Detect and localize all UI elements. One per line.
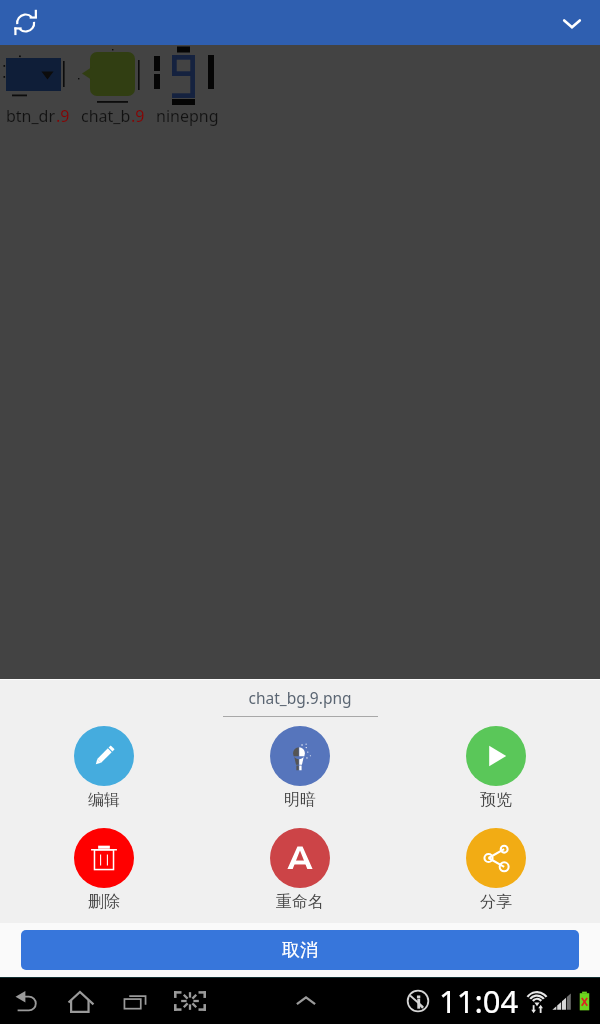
button[interactable]: Home (54, 977, 108, 1024)
button[interactable]: Expand notifications (288, 977, 324, 1024)
staticText: 取消 (282, 939, 318, 962)
button[interactable]: Refresh (6, 3, 46, 43)
staticText: btn_dr (6, 105, 56, 127)
staticText: chat_b (81, 105, 131, 127)
button[interactable]: Recents (108, 977, 161, 1024)
button[interactable]: 删除 (6, 828, 202, 912)
button[interactable]: Screenshot (161, 977, 218, 1024)
staticText: ninepng (156, 105, 219, 127)
button[interactable]: 取消 (21, 930, 579, 970)
button[interactable]: 分享 (398, 828, 594, 912)
button[interactable]: 编辑 (6, 726, 202, 810)
staticText: 预览 (480, 790, 512, 810)
button[interactable]: Back (2, 977, 54, 1024)
staticText: chat_bg.9.png (0, 687, 600, 708)
staticText: .9 (131, 105, 145, 127)
button[interactable]: 重命名 (202, 828, 398, 912)
staticText: .9 (56, 105, 70, 127)
button[interactable]: btn_dr (0, 45, 75, 127)
button[interactable]: 明暗 (202, 726, 398, 810)
staticText: 11:04 (439, 980, 519, 1022)
staticText: 编辑 (88, 790, 120, 810)
staticText: 删除 (88, 892, 120, 912)
staticText: 明暗 (284, 790, 316, 810)
button[interactable]: chat_b (75, 45, 150, 127)
staticText: 分享 (480, 892, 512, 912)
button[interactable]: Expand (552, 3, 592, 43)
button[interactable]: ninepng (150, 45, 225, 127)
button[interactable]: 预览 (398, 726, 594, 810)
staticText: 重命名 (276, 892, 324, 912)
